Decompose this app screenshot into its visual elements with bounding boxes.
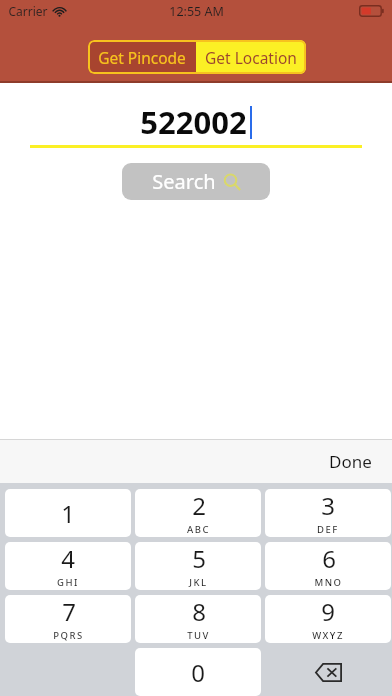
staticText: PQRS xyxy=(53,629,84,642)
staticText: Done xyxy=(329,450,372,473)
staticText: 1 xyxy=(61,497,75,530)
staticText: 12:55 AM xyxy=(169,3,224,20)
button[interactable]: Search xyxy=(122,163,270,200)
staticText: MNO xyxy=(314,576,343,589)
button[interactable]: 8 xyxy=(135,595,261,643)
staticText: Get Pincode xyxy=(98,47,186,68)
staticText: Search xyxy=(152,168,216,195)
staticText: 8 xyxy=(192,595,206,628)
button[interactable]: 2 xyxy=(135,489,261,537)
button[interactable]: Get Pincode xyxy=(88,40,196,74)
staticText: 9 xyxy=(321,595,335,628)
staticText: ABC xyxy=(187,523,210,536)
staticText: WXYZ xyxy=(312,629,344,642)
staticText: GHI xyxy=(57,576,79,589)
staticText: Carrier xyxy=(8,3,48,19)
staticText: 0 xyxy=(191,656,205,689)
button[interactable]: Done xyxy=(329,450,372,473)
button[interactable]: Get Location xyxy=(196,40,306,74)
button[interactable]: 5 xyxy=(135,542,261,590)
button[interactable]: 6 xyxy=(265,542,391,590)
button[interactable]: 7 xyxy=(5,595,131,643)
staticText: TUV xyxy=(187,629,210,642)
staticText: 6 xyxy=(322,542,336,575)
staticText: 2 xyxy=(192,489,206,522)
staticText: DEF xyxy=(317,523,339,536)
staticText: 522002 xyxy=(140,101,247,143)
button[interactable]: 3 xyxy=(265,489,391,537)
button[interactable]: 1 xyxy=(5,489,131,537)
button[interactable]: Delete xyxy=(265,648,391,696)
button[interactable]: 4 xyxy=(5,542,131,590)
staticText: JKL xyxy=(189,576,208,589)
button[interactable]: 9 xyxy=(265,595,391,643)
staticText: 7 xyxy=(62,595,76,628)
staticText: Get Location xyxy=(205,47,297,68)
staticText: 5 xyxy=(192,542,206,575)
button[interactable]: 0 xyxy=(135,648,261,696)
staticText: 4 xyxy=(61,542,75,575)
staticText: 3 xyxy=(321,489,335,522)
